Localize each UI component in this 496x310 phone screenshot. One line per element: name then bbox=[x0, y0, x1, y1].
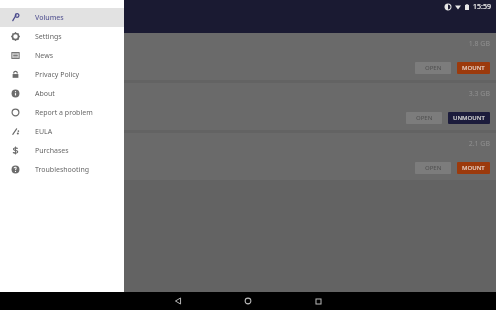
button[interactable]: EULA bbox=[0, 122, 124, 141]
button[interactable]: Recent apps bbox=[301, 292, 335, 310]
button[interactable]: 2.1 GB bbox=[0, 133, 496, 180]
staticText: MOUNT bbox=[462, 64, 485, 72]
staticText: Report a problem bbox=[35, 108, 93, 118]
button[interactable]: Settings bbox=[0, 27, 124, 46]
staticText: OPEN bbox=[425, 164, 442, 172]
staticText: EULA bbox=[35, 127, 53, 137]
staticText: 2.1 GB bbox=[468, 139, 490, 149]
staticText: 15:59 bbox=[473, 2, 491, 12]
button[interactable]: Purchases bbox=[0, 141, 124, 160]
staticText: Settings bbox=[35, 32, 62, 42]
staticText: About bbox=[35, 89, 55, 99]
button[interactable]: OPEN bbox=[406, 112, 442, 124]
button[interactable]: 1.8 GB bbox=[0, 33, 496, 80]
staticText: Purchases bbox=[35, 146, 69, 156]
staticText: UNMOUNT bbox=[453, 114, 485, 122]
button[interactable]: News bbox=[0, 46, 124, 65]
button[interactable]: MOUNT bbox=[457, 162, 490, 174]
staticText: OPEN bbox=[425, 64, 442, 72]
staticText: News bbox=[35, 51, 53, 61]
button[interactable]: About bbox=[0, 84, 124, 103]
button[interactable]: Report a problem bbox=[0, 103, 124, 122]
staticText: Troubleshooting bbox=[35, 165, 90, 175]
button[interactable]: Back bbox=[161, 292, 195, 310]
staticText: OPEN bbox=[416, 114, 433, 122]
button[interactable]: OPEN bbox=[415, 62, 451, 74]
button[interactable]: Volumes bbox=[0, 8, 124, 27]
button[interactable]: Troubleshooting bbox=[0, 160, 124, 179]
button[interactable]: Home bbox=[231, 292, 265, 310]
staticText: Volumes bbox=[35, 13, 64, 23]
button[interactable]: 3.3 GB bbox=[0, 83, 496, 130]
staticText: Privacy Policy bbox=[35, 70, 80, 80]
staticText: MOUNT bbox=[462, 164, 485, 172]
button[interactable]: UNMOUNT bbox=[448, 112, 490, 124]
button[interactable]: OPEN bbox=[415, 162, 451, 174]
button[interactable]: Privacy Policy bbox=[0, 65, 124, 84]
staticText: 3.3 GB bbox=[468, 89, 490, 99]
staticText: 1.8 GB bbox=[468, 39, 490, 49]
button[interactable]: MOUNT bbox=[457, 62, 490, 74]
